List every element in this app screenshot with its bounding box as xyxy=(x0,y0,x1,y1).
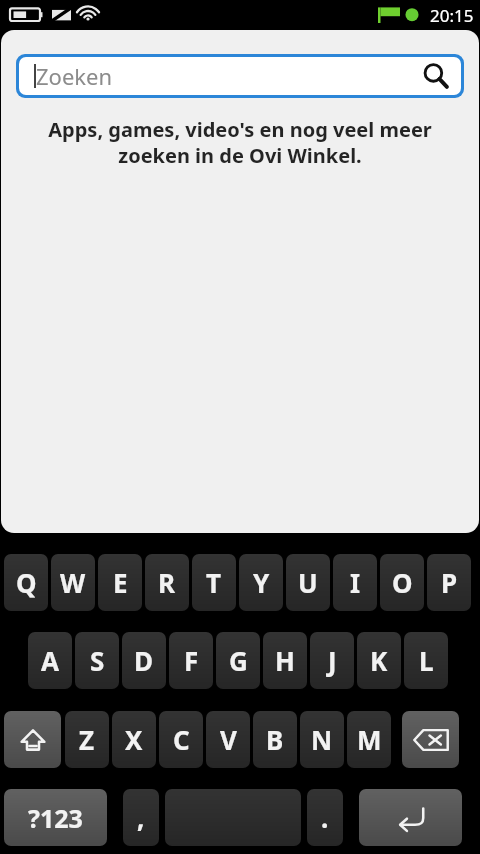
staticText: , xyxy=(137,800,145,835)
button[interactable]: Y xyxy=(239,554,283,611)
button[interactable]: Zoeken xyxy=(19,57,461,95)
button[interactable]: A xyxy=(28,632,72,689)
button[interactable]: Q xyxy=(4,554,48,611)
button[interactable]: Space xyxy=(165,789,301,846)
staticText: . xyxy=(321,800,329,835)
staticText: Y xyxy=(253,565,270,600)
staticText: D xyxy=(134,643,154,678)
staticText: ?123 xyxy=(28,801,83,835)
button[interactable]: L xyxy=(404,632,448,689)
button[interactable]: W xyxy=(51,554,95,611)
button[interactable]: P xyxy=(427,554,471,611)
button[interactable]: V xyxy=(206,711,250,768)
button[interactable]: B xyxy=(253,711,297,768)
button[interactable]: I xyxy=(333,554,377,611)
button[interactable]: J xyxy=(310,632,354,689)
staticText: O xyxy=(392,565,413,600)
button[interactable]: Backspace xyxy=(402,711,459,768)
button[interactable]: H xyxy=(263,632,307,689)
staticText: P xyxy=(441,565,458,600)
button[interactable]: Shift xyxy=(4,711,61,768)
staticText: U xyxy=(298,565,318,600)
staticText: J xyxy=(328,643,337,678)
staticText: N xyxy=(311,722,333,757)
staticText: G xyxy=(229,643,248,678)
staticText: W xyxy=(60,565,86,600)
button[interactable]: O xyxy=(380,554,424,611)
staticText: Q xyxy=(16,565,37,600)
button[interactable]: ?123 xyxy=(4,789,107,846)
button[interactable]: D xyxy=(122,632,166,689)
button[interactable]: Search xyxy=(423,63,449,89)
staticText: F xyxy=(184,643,199,678)
staticText: R xyxy=(158,565,176,600)
staticText: 20:15 xyxy=(430,4,474,27)
button[interactable]: N xyxy=(300,711,344,768)
button[interactable]: Z xyxy=(65,711,109,768)
staticText: S xyxy=(90,643,105,678)
staticText: E xyxy=(113,565,128,600)
button[interactable]: X xyxy=(112,711,156,768)
button[interactable]: S xyxy=(75,632,119,689)
staticText: C xyxy=(173,722,190,757)
staticText: K xyxy=(370,643,388,678)
staticText: A xyxy=(41,643,59,678)
staticText: M xyxy=(357,722,382,757)
button[interactable]: . xyxy=(307,789,343,846)
staticText: B xyxy=(266,722,284,757)
staticText: Z xyxy=(79,722,95,757)
staticText: V xyxy=(220,722,237,757)
button[interactable]: R xyxy=(145,554,189,611)
button[interactable]: U xyxy=(286,554,330,611)
button[interactable]: M xyxy=(347,711,391,768)
button[interactable]: E xyxy=(98,554,142,611)
staticText: I xyxy=(350,565,361,600)
button[interactable]: G xyxy=(216,632,260,689)
staticText: Zoeken xyxy=(36,61,113,91)
button[interactable]: K xyxy=(357,632,401,689)
button[interactable]: Enter xyxy=(359,789,462,846)
button[interactable]: F xyxy=(169,632,213,689)
staticText: X xyxy=(125,722,143,757)
staticText: L xyxy=(419,643,434,678)
button[interactable]: C xyxy=(159,711,203,768)
staticText: T xyxy=(206,565,222,600)
staticText: H xyxy=(275,643,295,678)
button[interactable]: , xyxy=(123,789,159,846)
button[interactable]: T xyxy=(192,554,236,611)
staticText: Apps, games, video's en nog veel meer zo… xyxy=(17,116,463,168)
